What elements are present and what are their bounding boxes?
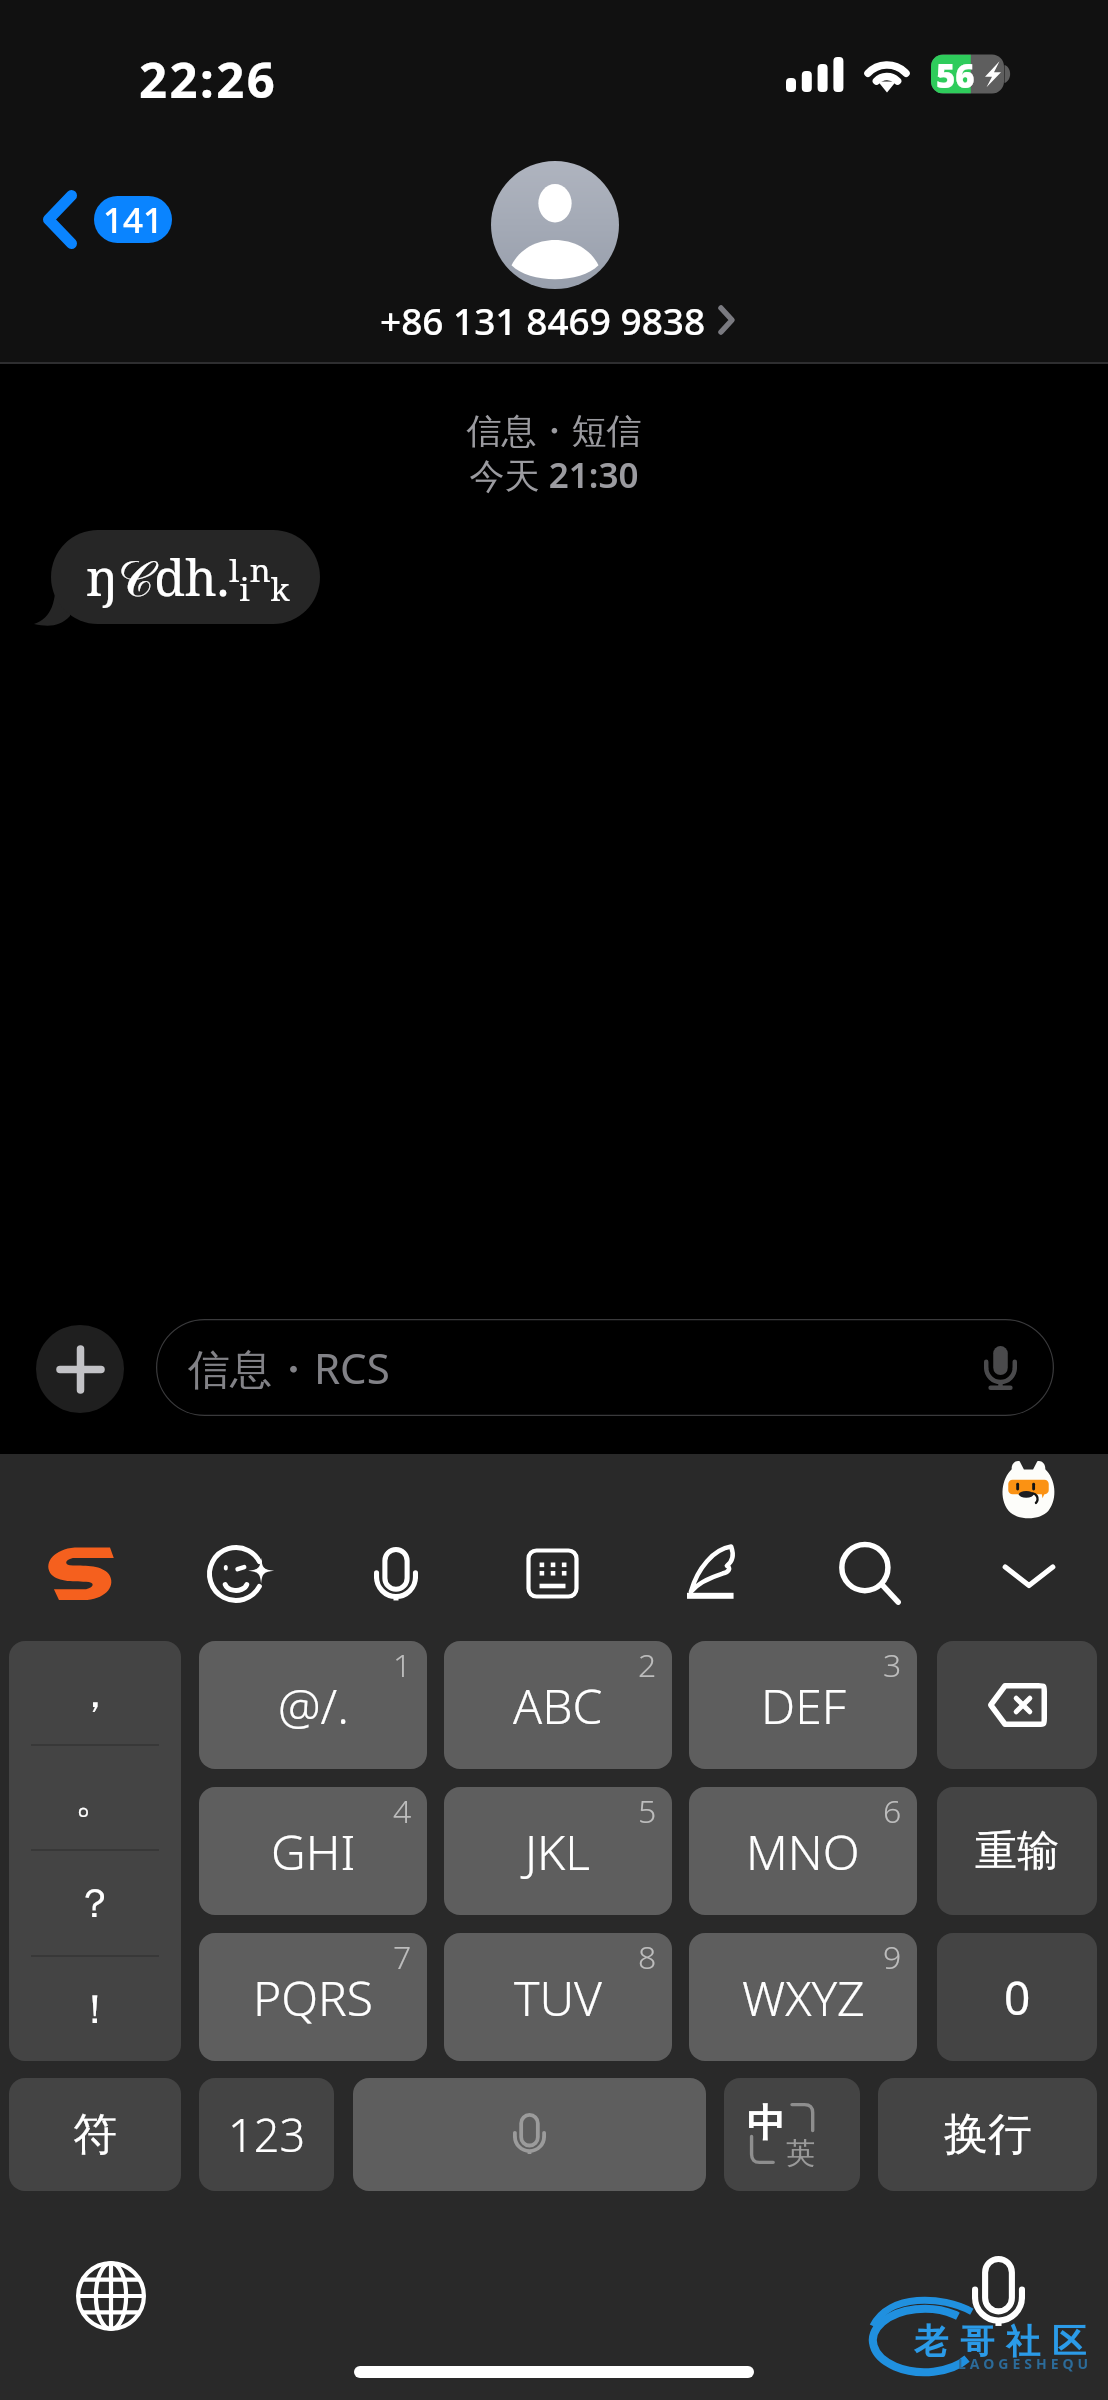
staticText: TUV — [514, 1965, 602, 2030]
staticText: 2 — [638, 1643, 657, 1687]
staticText: 22:26 — [139, 46, 278, 113]
button[interactable]: GHI — [199, 1787, 427, 1915]
staticText: 56 — [936, 53, 975, 98]
staticText: 4 — [393, 1789, 412, 1833]
button[interactable]: Voice — [374, 1547, 418, 1603]
staticText: GHI — [271, 1819, 356, 1884]
staticText: 英 — [786, 2135, 815, 2172]
button[interactable]: Emoji — [207, 1545, 265, 1603]
button[interactable]: ！ — [9, 1957, 181, 2061]
button[interactable]: Add attachment — [36, 1325, 124, 1413]
button[interactable]: Space — [353, 2078, 706, 2191]
button[interactable]: @/. — [199, 1641, 427, 1769]
staticText: DEF — [761, 1673, 846, 1738]
staticText: 今天 21:30 — [0, 451, 1108, 499]
button[interactable]: 符 — [9, 2078, 181, 2191]
staticText: 重输 — [975, 1825, 1059, 1878]
staticText: 8 — [638, 1935, 657, 1979]
staticText: WXYZ — [742, 1965, 865, 2030]
button[interactable]: DEF — [689, 1641, 917, 1769]
staticText: 3 — [883, 1643, 902, 1687]
button[interactable]: ？ — [9, 1851, 181, 1955]
staticText: PQRS — [253, 1965, 374, 2030]
button[interactable]: 重输 — [937, 1787, 1097, 1915]
button[interactable]: Chinese English toggle — [724, 2078, 860, 2191]
staticText: 1 — [393, 1643, 412, 1687]
staticText: @/. — [278, 1673, 349, 1738]
staticText: JKL — [525, 1819, 591, 1884]
staticText: 换行 — [944, 2107, 1032, 2162]
button[interactable]: 。 — [9, 1746, 181, 1849]
staticText: 5 — [638, 1789, 657, 1833]
staticText: +86 131 8469 9838 — [380, 295, 706, 345]
staticText: 中 — [747, 2099, 785, 2147]
button[interactable]: Hide keyboard — [1002, 1562, 1056, 1590]
button[interactable]: 换行 — [878, 2078, 1097, 2191]
button[interactable]: Dictate message — [968, 1335, 1033, 1400]
button[interactable]: Voice input — [972, 2256, 1025, 2329]
staticText: 老哥社区 — [908, 2320, 1092, 2363]
staticText: 141 — [103, 196, 164, 243]
button[interactable]: Change keyboard — [76, 2261, 146, 2331]
button[interactable]: ， — [9, 1641, 181, 1744]
button[interactable]: WXYZ — [689, 1933, 917, 2061]
button[interactable]: JKL — [444, 1787, 672, 1915]
button[interactable]: Handwriting — [687, 1546, 735, 1598]
button[interactable]: Back — [33, 182, 182, 257]
button[interactable]: MNO — [689, 1787, 917, 1915]
staticText: 符 — [73, 2107, 117, 2162]
staticText: 9 — [883, 1935, 902, 1979]
staticText: 信息・短信 — [0, 409, 1108, 453]
button[interactable]: 信息・RCS — [156, 1319, 1054, 1416]
button[interactable]: ABC — [444, 1641, 672, 1769]
staticText: ŋ𝒞dh.ˡᵢⁿₖ — [86, 543, 290, 611]
staticText: 信息・RCS — [188, 1339, 390, 1396]
button[interactable]: ŋ𝒞dh.ˡᵢⁿₖ — [51, 530, 320, 624]
button[interactable]: Sogou assistant — [1000, 1460, 1057, 1519]
staticText: 0 — [1004, 1966, 1031, 2029]
staticText: ？ — [75, 1878, 115, 1928]
button[interactable]: Keyboard layout — [526, 1548, 579, 1599]
staticText: 6 — [883, 1789, 902, 1833]
button[interactable]: 0 — [937, 1933, 1097, 2061]
button[interactable]: Backspace — [937, 1641, 1097, 1769]
staticText: ， — [75, 1668, 115, 1718]
staticText: LAOGESHEQU — [958, 2354, 1093, 2373]
staticText: 123 — [228, 2104, 306, 2165]
staticText: 7 — [393, 1935, 412, 1979]
button[interactable]: Contact details — [380, 295, 734, 345]
staticText: ABC — [513, 1673, 603, 1738]
staticText: MNO — [746, 1819, 860, 1884]
staticText: 。 — [75, 1773, 115, 1823]
button[interactable]: Search — [838, 1542, 902, 1606]
button[interactable]: 123 — [199, 2078, 334, 2191]
button[interactable]: PQRS — [199, 1933, 427, 2061]
button[interactable]: TUV — [444, 1933, 672, 2061]
staticText: ！ — [75, 1984, 115, 2034]
button[interactable]: Sogou — [47, 1546, 110, 1600]
